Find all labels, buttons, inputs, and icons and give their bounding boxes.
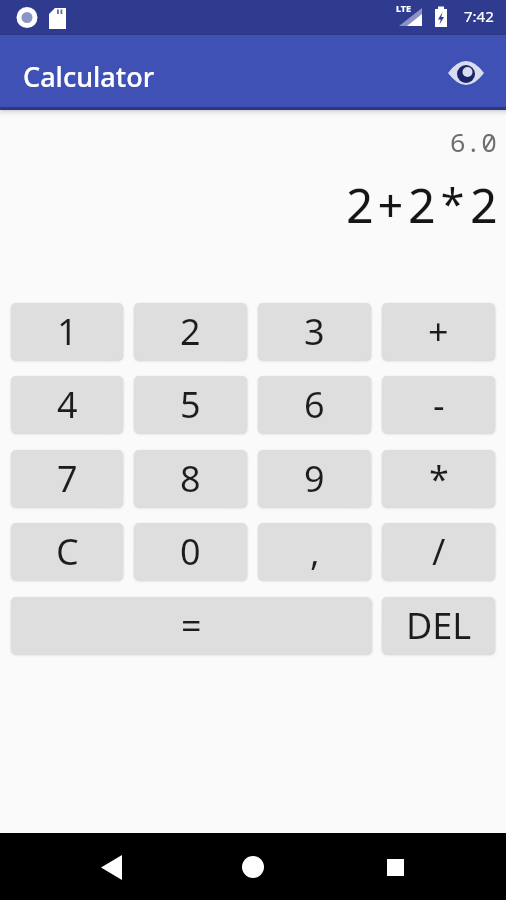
button[interactable]: 6 — [258, 376, 371, 433]
staticText: DEL — [406, 601, 472, 650]
staticText: 7:42 — [464, 6, 494, 26]
button[interactable]: * — [382, 450, 495, 507]
button[interactable] — [447, 54, 485, 92]
staticText: 2+2*2 — [345, 172, 501, 237]
button[interactable]: 2 — [134, 303, 247, 360]
button[interactable] — [365, 837, 425, 897]
staticText: - — [433, 380, 445, 429]
staticText: * — [429, 454, 449, 503]
button[interactable]: 8 — [134, 450, 247, 507]
staticText: 3 — [304, 307, 325, 356]
staticText: C — [56, 527, 79, 576]
button[interactable]: 3 — [258, 303, 371, 360]
staticText: 0 — [180, 527, 201, 576]
staticText: 5 — [180, 380, 201, 429]
button[interactable]: 4 — [11, 376, 123, 433]
staticText: 7 — [57, 454, 78, 503]
staticText: 4 — [57, 380, 78, 429]
button[interactable]: C — [11, 523, 123, 580]
button[interactable]: - — [382, 376, 495, 433]
staticText: / — [432, 527, 446, 576]
button[interactable]: 7 — [11, 450, 123, 507]
staticText: Calculator — [23, 58, 155, 95]
button[interactable]: DEL — [382, 597, 495, 654]
button[interactable]: / — [382, 523, 495, 580]
button[interactable]: = — [11, 597, 371, 654]
button[interactable]: + — [382, 303, 495, 360]
button[interactable]: 5 — [134, 376, 247, 433]
staticText: 8 — [180, 454, 201, 503]
staticText: = — [181, 601, 202, 650]
button[interactable]: 0 — [134, 523, 247, 580]
staticText: 6 — [304, 380, 325, 429]
staticText: LTE — [396, 2, 412, 14]
staticText: 2 — [180, 307, 201, 356]
staticText: 1 — [57, 307, 78, 356]
staticText: , — [310, 527, 320, 576]
staticText: 6.0 — [450, 124, 497, 159]
button[interactable] — [81, 837, 141, 897]
button[interactable]: 9 — [258, 450, 371, 507]
staticText: 9 — [304, 454, 325, 503]
button[interactable]: , — [258, 523, 371, 580]
staticText: + — [428, 307, 449, 356]
button[interactable]: 1 — [11, 303, 123, 360]
button[interactable] — [223, 837, 283, 897]
